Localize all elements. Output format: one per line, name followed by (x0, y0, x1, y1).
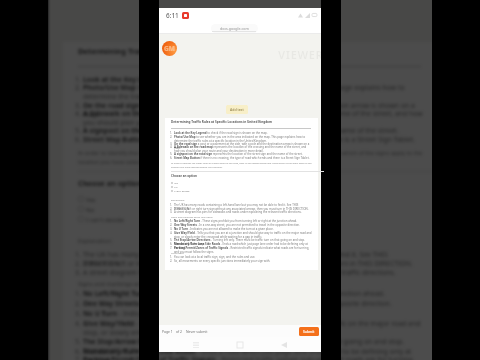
staticText: 5. (170, 238, 173, 242)
staticText: 5. (170, 152, 173, 156)
button[interactable]: Back (277, 338, 291, 352)
staticText: In order to identify the traffic rules a… (171, 162, 319, 168)
button[interactable]: Add text (213, 12, 267, 32)
staticText: A street diagram has pins for sidewalks … (174, 210, 302, 214)
staticText: Give Way/Yield - Tells you that you are … (83, 319, 423, 337)
staticText: The UK has many roads containing a left-… (83, 250, 423, 268)
staticText: A signpost on the road sign represents t… (83, 126, 399, 135)
staticText: 1. (170, 203, 173, 207)
staticText: 4. (170, 145, 173, 149)
staticText: 2. (170, 135, 173, 139)
staticText: Determining Traffic Rules at Specific Lo… (78, 46, 327, 56)
staticText: Give Way/Yield - Tells you that you are … (174, 231, 312, 239)
staticText: I can't decide (174, 189, 190, 192)
button[interactable]: Account avatar (162, 41, 177, 56)
staticText: Add text (230, 107, 244, 112)
staticText: I can't decide (86, 215, 124, 223)
staticText: No (174, 185, 178, 188)
staticText: 2. (170, 223, 173, 227)
staticText: Choose an option (171, 174, 198, 178)
button[interactable]: Yes (171, 181, 211, 184)
staticText: 6. (170, 242, 173, 246)
staticText: Yes (86, 195, 96, 203)
button[interactable]: Submit (299, 327, 319, 336)
button[interactable]: docs.google.com (211, 24, 258, 33)
staticText: Signs and markings which may apply: (171, 215, 214, 218)
staticText: No U Turn - Indicates you are not allowe… (83, 309, 328, 318)
staticText: If there is left or right turn sign with… (174, 207, 309, 211)
staticText: Mandatory/Turn Lane Side Roads - Ends a … (174, 242, 312, 250)
staticText: Submit (303, 329, 315, 334)
staticText: Signs and markings which may apply: (78, 280, 182, 288)
staticText: Never submit (186, 329, 208, 334)
staticText: A signpost on the road sign represents t… (174, 152, 303, 156)
staticText: A street diagram has pins for sidewalks … (83, 268, 396, 277)
staticText: 1. (170, 255, 173, 259)
staticText: No Left/Right Turn - These signs prohibi… (83, 289, 385, 298)
button[interactable]: Recent apps (189, 338, 203, 352)
staticText: Explanation: (78, 237, 113, 245)
staticText: The UK has many roads containing a left-… (174, 203, 312, 211)
staticText: You can look at a local traffic sign, si… (174, 255, 256, 259)
staticText: 1. (170, 219, 173, 223)
button[interactable]: Home (233, 338, 247, 352)
staticText: On the road sign a post or a pavement at… (83, 101, 423, 119)
staticText: One Way Streets - In a one-way street, y… (174, 223, 300, 227)
staticText: 2. (170, 207, 173, 211)
button[interactable]: I can't decide (171, 189, 211, 192)
staticText: Parking Permit/Zones of Traffic Signals … (174, 246, 312, 254)
staticText: On the road sign a post or a pavement at… (174, 142, 312, 150)
staticText: No Left/Right Turn - These signs prohibi… (174, 219, 298, 223)
staticText: Parking Permit/Zones of Traffic Signals … (83, 355, 423, 360)
staticText: VIEWER (278, 47, 324, 62)
staticText: So, all movements on every specific junc… (174, 259, 271, 263)
staticText: The Stop/Arrow Directives - Turning left… (83, 337, 423, 355)
staticText: Choose an option (78, 178, 142, 188)
staticText: 4. (170, 231, 173, 235)
staticText: Page 1 (162, 329, 173, 334)
staticText: If there is left or right turn sign with… (83, 259, 413, 268)
staticText: Determining Traffic Rules at Specific Lo… (171, 120, 273, 124)
staticText: 3. (170, 210, 173, 214)
staticText: GM (164, 44, 175, 53)
staticText: Street Map Button if there is no crossin… (174, 156, 310, 160)
staticText: A Sidewalk on the road map represents th… (83, 109, 423, 127)
staticText: No U Turn - Indicates you are not allowe… (174, 227, 274, 231)
staticText: The Stop/Arrow Directives - Turning left… (174, 238, 312, 246)
button[interactable]: I can't decide (78, 215, 176, 223)
staticText: Yes (174, 181, 178, 184)
staticText: Photo/Use Map to see whether you are in … (174, 135, 312, 143)
staticText: 4. (75, 319, 81, 328)
staticText: No (86, 205, 95, 213)
staticText: 7. (170, 246, 173, 250)
staticText: 3. (170, 227, 173, 231)
staticText: of 2 (176, 329, 183, 334)
staticText: Street Map Button if there is no crossin… (83, 135, 416, 144)
button[interactable]: Yes (78, 195, 176, 203)
staticText: 2. (170, 259, 173, 263)
button[interactable]: Add text (226, 105, 248, 114)
staticText: Explanation: (171, 198, 185, 201)
button[interactable]: No (78, 205, 176, 213)
staticText: Photo/Use Map to see whether you are in … (83, 83, 423, 101)
staticText: 3. (170, 142, 173, 146)
button[interactable]: No (171, 185, 211, 188)
staticText: 6. (170, 156, 173, 160)
staticText: Mandatory/Turn Lane Side Roads - Ends a … (83, 347, 423, 360)
staticText: docs.google.com (220, 26, 249, 31)
staticText: Look at the Key Legend to check if the r… (83, 75, 313, 84)
